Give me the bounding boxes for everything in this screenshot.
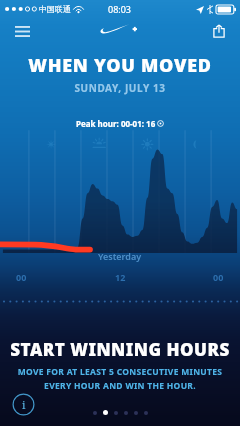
button[interactable] bbox=[124, 411, 128, 415]
staticText: 00 bbox=[16, 271, 27, 283]
button[interactable] bbox=[134, 411, 138, 415]
button[interactable]: Nike Plus bbox=[97, 21, 143, 41]
button[interactable] bbox=[144, 411, 148, 415]
button[interactable] bbox=[114, 411, 118, 415]
button[interactable]: Menu bbox=[8, 18, 36, 44]
staticText: i bbox=[22, 397, 26, 412]
staticText: EVERY HOUR AND WIN THE HOUR. bbox=[0, 380, 240, 392]
staticText: Yesterday bbox=[98, 250, 142, 262]
staticText: 08:03 bbox=[108, 3, 132, 15]
staticText: MOVE FOR AT LEAST 5 CONSECUTIVE MINUTES bbox=[0, 366, 240, 378]
staticText: 中国联通 bbox=[39, 4, 71, 14]
button[interactable] bbox=[103, 410, 108, 415]
staticText: 12 bbox=[115, 271, 126, 283]
staticText: Peak hour: 00-01: 16 bbox=[76, 118, 156, 129]
button[interactable] bbox=[93, 411, 97, 415]
staticText: SUNDAY, JULY 13 bbox=[0, 81, 240, 95]
button[interactable]: Information bbox=[12, 393, 35, 416]
staticText: WHEN YOU MOVED bbox=[0, 53, 240, 78]
staticText: START WINNING HOURS bbox=[0, 338, 240, 361]
button[interactable]: Share bbox=[206, 18, 232, 44]
staticText: 00 bbox=[213, 271, 224, 283]
